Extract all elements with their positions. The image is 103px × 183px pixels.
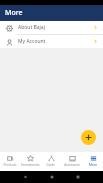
button[interactable]: Add bbox=[81, 130, 96, 145]
staticText: Products bbox=[3, 163, 17, 167]
button[interactable]: Assistance bbox=[61, 152, 82, 171]
staticText: More bbox=[5, 8, 23, 18]
staticText: About Bajaj bbox=[18, 24, 93, 31]
button[interactable]: Cards bbox=[40, 152, 61, 171]
staticText: Cards bbox=[46, 163, 55, 167]
button[interactable]: About Bajaj bbox=[0, 21, 103, 34]
button[interactable]: Products bbox=[0, 152, 20, 171]
button[interactable]: My Account bbox=[0, 35, 103, 48]
staticText: Assistance bbox=[64, 163, 80, 167]
staticText: Investments bbox=[21, 163, 40, 167]
staticText: More bbox=[89, 163, 97, 167]
staticText: My Account bbox=[18, 38, 93, 45]
button[interactable]: Investments bbox=[20, 152, 40, 171]
button[interactable]: More bbox=[82, 152, 103, 171]
